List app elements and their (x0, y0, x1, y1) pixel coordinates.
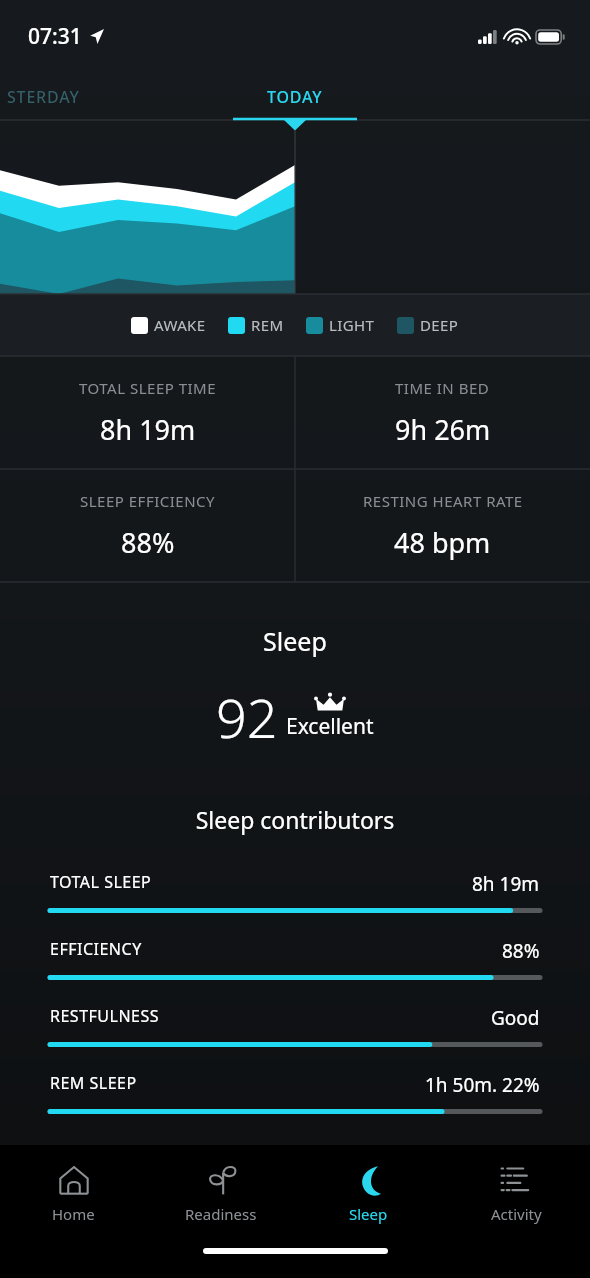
staticText: TODAY (267, 86, 323, 108)
staticText: Home (52, 1204, 95, 1224)
staticText: REM SLEEP (50, 1072, 137, 1094)
staticText: 48 bpm (394, 524, 491, 561)
staticText: 88% (121, 524, 175, 561)
staticText: 8h 19m (100, 411, 196, 448)
staticText: REM (251, 315, 284, 335)
staticText: Excellent (286, 712, 374, 741)
staticText: DEEP (420, 315, 459, 335)
staticText: STERDAY (7, 86, 80, 108)
staticText: Sleep (263, 624, 327, 658)
staticText: Sleep contributors (0, 804, 590, 835)
staticText: 1h 50m. 22% (425, 1072, 540, 1098)
staticText: 88% (502, 938, 540, 964)
staticText: 92 (216, 680, 278, 754)
button[interactable]: TODAY (205, 72, 385, 122)
staticText: EFFICIENCY (50, 938, 142, 960)
staticText: TOTAL SLEEP (50, 871, 152, 893)
staticText: AWAKE (154, 315, 206, 335)
staticText: LIGHT (329, 315, 375, 335)
button[interactable]: TOTAL SLEEP (0, 871, 590, 938)
staticText: RESTING HEART RATE (363, 491, 523, 511)
button[interactable]: RESTFULNESS (0, 1005, 590, 1072)
staticText: Readiness (185, 1204, 257, 1224)
staticText: Good (491, 1005, 540, 1031)
button[interactable]: TOTAL SLEEP TIME (0, 356, 295, 469)
button[interactable]: Home (0, 1145, 147, 1240)
button[interactable]: REM SLEEP (0, 1072, 590, 1139)
button[interactable]: STERDAY (0, 72, 180, 122)
button[interactable]: EFFICIENCY (0, 938, 590, 1005)
staticText: RESTFULNESS (50, 1005, 160, 1027)
button[interactable]: Readiness (147, 1145, 294, 1240)
staticText: SLEEP EFFICIENCY (80, 491, 216, 511)
button[interactable]: RESTING HEART RATE (295, 469, 590, 582)
staticText: Sleep (349, 1204, 388, 1224)
button[interactable]: TIME IN BED (295, 356, 590, 469)
staticText: 9h 26m (395, 411, 491, 448)
staticText: TOTAL SLEEP TIME (79, 378, 217, 398)
staticText: 07:31 (28, 22, 82, 51)
staticText: Activity (491, 1204, 542, 1224)
button[interactable]: Sleep (294, 1145, 442, 1240)
button[interactable]: SLEEP EFFICIENCY (0, 469, 295, 582)
staticText: 8h 19m (472, 871, 540, 897)
staticText: TIME IN BED (395, 378, 490, 398)
button[interactable]: Activity (442, 1145, 590, 1240)
